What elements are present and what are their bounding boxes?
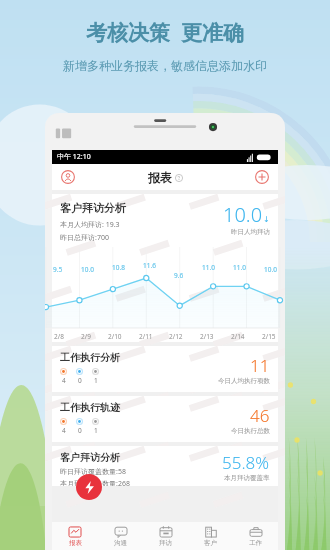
staticText: 本月拜访覆盖率 (224, 474, 270, 482)
button[interactable]: 工作执行轨迹 (52, 396, 278, 442)
staticText: 考核决策 更准确 (86, 18, 244, 47)
staticText: 客户 (204, 539, 217, 547)
staticText: 4 (62, 426, 66, 435)
staticText: 2/10 (108, 332, 122, 341)
button[interactable]: Add (252, 167, 272, 187)
staticText: 新增多种业务报表，敏感信息添加水印 (63, 58, 267, 73)
button[interactable]: 工作执行分析 (52, 346, 278, 392)
staticText: 4 (62, 376, 66, 385)
staticText: 2/8 (54, 332, 64, 341)
staticText: 2/12 (169, 332, 183, 341)
button[interactable]: Quick action (76, 474, 102, 500)
staticText: 客户拜访分析 (60, 451, 120, 464)
staticText: 昨日人均拜访 (231, 228, 270, 236)
button[interactable]: 沟通 (98, 522, 143, 550)
staticText: 本月拜访覆盖数量:268 (60, 479, 130, 486)
staticText: 1 (94, 426, 98, 435)
staticText: 2/14 (231, 332, 245, 341)
staticText: 报表 (148, 170, 172, 185)
staticText: 2/9 (81, 332, 91, 341)
staticText: 11.6 (143, 261, 156, 270)
button[interactable]: Profile (58, 167, 78, 187)
staticText: 10.0 (81, 265, 94, 274)
staticText: 11.0 (202, 263, 215, 272)
staticText: 昨日总拜访:700 (60, 233, 109, 243)
staticText: 今日执行总数 (231, 427, 270, 435)
staticText: 工作执行分析 (60, 351, 120, 364)
staticText: 中午 12:10 (57, 152, 91, 162)
button[interactable]: 报表 (52, 522, 98, 550)
staticText: 工作 (249, 539, 262, 547)
staticText: 10.0 (264, 265, 277, 274)
staticText: 10.8 (112, 263, 125, 272)
staticText: 昨日拜访覆盖数量:58 (60, 467, 126, 477)
staticText: 工作执行轨迹 (60, 401, 120, 414)
staticText: 0 (78, 426, 82, 435)
staticText: 2/11 (139, 332, 153, 341)
button[interactable]: 客户拜访分析 (52, 446, 278, 486)
staticText: 1 (94, 376, 98, 385)
staticText: 55.8% (222, 451, 270, 474)
staticText: 46 (250, 404, 270, 427)
staticText: 11.0 (233, 263, 246, 272)
staticText: 报表 (69, 539, 82, 547)
staticText: 拜访 (159, 539, 172, 547)
staticText: 10.0 (223, 201, 263, 228)
button[interactable]: 拜访 (143, 522, 188, 550)
staticText: 沟通 (114, 539, 127, 547)
staticText: 2/13 (200, 332, 214, 341)
button[interactable]: 工作 (233, 522, 278, 550)
staticText: 客户拜访分析 (60, 201, 126, 215)
staticText: 本月人均拜访: 19.3 (60, 220, 120, 230)
button[interactable]: 客户拜访分析 (52, 194, 278, 342)
staticText: 11 (250, 354, 270, 377)
staticText: 今日人均执行项数 (218, 377, 270, 385)
staticText: 9.5 (53, 265, 63, 274)
staticText: 2/15 (262, 332, 276, 341)
staticText: 9.6 (174, 271, 184, 280)
staticText: 0 (78, 376, 82, 385)
staticText: ↓ (263, 215, 270, 224)
button[interactable]: 客户 (188, 522, 233, 550)
